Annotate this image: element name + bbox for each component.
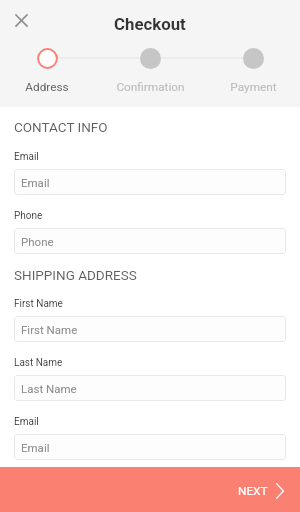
staticText: Confirmation [116,80,185,94]
staticText: Phone [14,210,43,222]
staticText: Payment [230,80,277,94]
button[interactable]: Payment [206,48,300,94]
staticText: First Name [14,298,63,310]
staticText: Email [21,176,50,189]
staticText: Last Name [14,357,63,369]
button[interactable]: Close [5,4,37,36]
button[interactable]: Last Name [14,375,286,401]
staticText: NEXT [238,484,268,498]
button[interactable]: NEXT [0,467,300,512]
button[interactable]: Confirmation [103,48,197,94]
staticText: SHIPPING ADDRESS [14,267,137,283]
staticText: Phone [21,235,54,248]
button[interactable]: Email [14,434,286,460]
staticText: Last Name [21,382,77,395]
button[interactable]: Phone [14,228,286,254]
staticText: Email [14,416,39,428]
staticText: Checkout [114,14,186,34]
button[interactable]: Address [0,48,94,94]
button[interactable]: First Name [14,316,286,342]
staticText: CONTACT INFO [14,119,108,135]
button[interactable]: Email [14,169,286,195]
staticText: Email [21,441,50,454]
staticText: Email [14,151,39,163]
staticText: Address [25,80,69,94]
staticText: First Name [21,323,78,336]
